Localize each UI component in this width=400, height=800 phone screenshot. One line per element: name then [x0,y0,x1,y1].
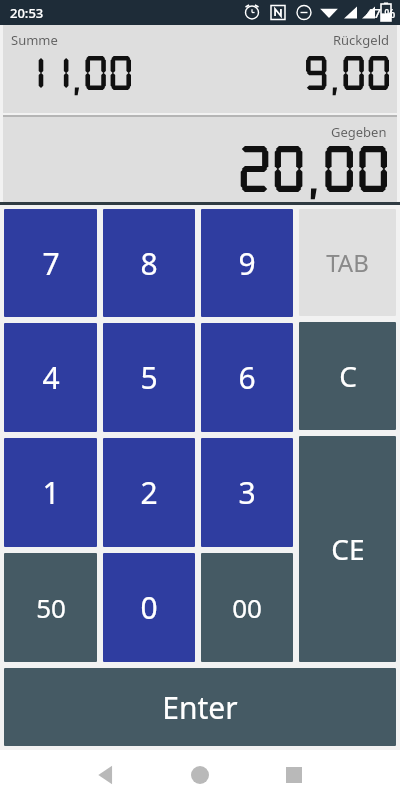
staticText: Rückgeld [333,31,389,49]
button[interactable]: 3 [201,438,293,547]
staticText: TAB [326,246,369,279]
staticText: 50 [36,590,66,625]
button[interactable]: Enter [4,668,396,746]
button[interactable]: TAB [299,209,396,316]
button[interactable]: 5 [103,323,195,432]
staticText: 9 [238,243,256,284]
staticText: CE [331,530,365,568]
button[interactable]: CE [299,436,396,662]
staticText: 7 [42,243,60,284]
staticText: 0 [140,587,158,628]
staticText: 5 [140,357,158,398]
button[interactable]: 2 [103,438,195,547]
button[interactable]: 7 [4,209,97,317]
staticText: C [339,357,357,395]
staticText: Summe [11,31,58,49]
button[interactable]: 0 [103,553,195,662]
button[interactable]: 50 [4,553,97,662]
button[interactable]: 4 [4,323,97,432]
button[interactable]: 8 [103,209,195,317]
staticText: 47 % [366,4,396,22]
staticText: 2 [140,472,158,513]
button[interactable]: 9 [201,209,293,317]
staticText: 8 [140,243,158,284]
staticText: Enter [162,687,238,728]
staticText: 1 [42,472,60,513]
staticText: Gegeben [331,123,387,141]
staticText: 20:53 [10,4,44,22]
staticText: 3 [238,472,256,513]
button[interactable]: 6 [201,323,293,432]
staticText: 6 [238,357,256,398]
staticText: 00 [232,590,262,625]
button[interactable]: 1 [4,438,97,547]
button[interactable]: 00 [201,553,293,662]
button[interactable]: C [299,322,396,430]
staticText: 4 [42,357,60,398]
